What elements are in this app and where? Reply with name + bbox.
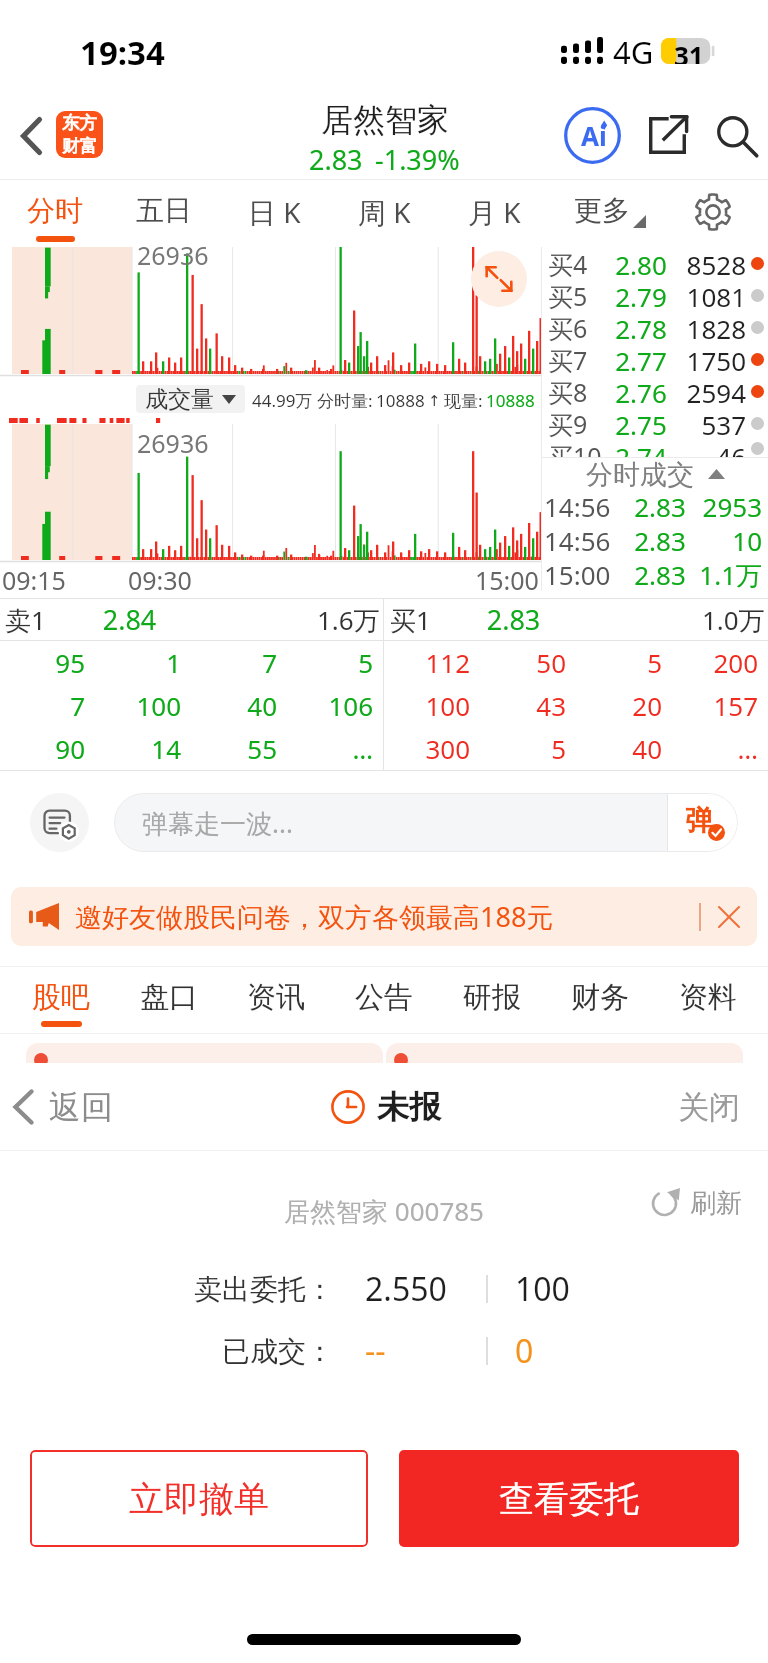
staticText: 09:15 [2, 563, 66, 591]
button[interactable]: 买6 [542, 311, 768, 343]
button[interactable]: 7 [0, 684, 383, 727]
staticText: 2.83 [309, 141, 363, 178]
button[interactable]: 95 [0, 641, 383, 684]
button[interactable]: 立即撤单 [30, 1450, 368, 1547]
button[interactable]: 分时成交 [542, 458, 768, 489]
button[interactable]: 日 K [219, 180, 329, 247]
staticText: 买8 [548, 375, 606, 407]
staticText: 43 [480, 688, 566, 723]
staticText: 买7 [548, 343, 606, 375]
staticText: 2953 [694, 489, 762, 523]
button[interactable]: Fullscreen [471, 251, 527, 307]
button[interactable]: Settings [675, 180, 750, 247]
staticText: 2.76 [606, 375, 676, 407]
staticText: 买6 [548, 311, 606, 343]
button[interactable]: East Money logo [56, 111, 103, 158]
button[interactable]: 周 K [329, 180, 439, 247]
button[interactable]: 买9 [542, 407, 768, 439]
staticText: 2.74 [606, 439, 676, 457]
staticText: 买1 [390, 602, 431, 638]
button[interactable]: 90 [0, 727, 383, 770]
button[interactable]: 更多 [550, 180, 670, 247]
staticText: 14:56 [544, 489, 626, 523]
staticText: 300 [384, 731, 470, 766]
staticText: 1.0万 [702, 602, 765, 638]
button[interactable]: Send danmu [668, 793, 738, 852]
staticText: 14:56 [544, 523, 626, 557]
staticText: 分时成交 [586, 458, 694, 489]
staticText: 买4 [548, 247, 606, 279]
staticText: 106 [287, 688, 373, 723]
button[interactable]: 成交量 [145, 385, 236, 413]
button[interactable]: Back [6, 104, 56, 168]
staticText: 资讯 [247, 979, 305, 1016]
button[interactable]: 返回 [14, 1077, 113, 1137]
staticText: 100 [95, 688, 181, 723]
staticText: 分时 [27, 193, 83, 228]
staticText: 8528 [676, 247, 746, 279]
staticText: 1 [95, 645, 181, 680]
staticText: 15:00 [544, 557, 626, 591]
staticText: 1081 [676, 279, 746, 311]
button[interactable]: 弹幕走一波... [114, 793, 667, 852]
staticText: 100 [515, 1267, 570, 1311]
staticText: 100 [384, 688, 470, 723]
button[interactable]: 100 [384, 684, 768, 727]
staticText: 46 [676, 439, 746, 457]
button[interactable]: 112 [384, 641, 768, 684]
staticText: -1.39% [375, 141, 460, 178]
button[interactable]: 14:56 [542, 523, 768, 557]
button[interactable]: 研报 [438, 967, 546, 1034]
staticText: 50 [480, 645, 566, 680]
staticText: ↑ [428, 392, 441, 409]
staticText: 已成交： [0, 1334, 334, 1369]
button[interactable]: 股吧 [7, 967, 115, 1034]
button[interactable]: 买10 [542, 439, 768, 457]
staticText: 东方 [62, 112, 97, 134]
button[interactable]: 分时 [0, 180, 110, 247]
staticText: 2.80 [606, 247, 676, 279]
staticText: 月 K [468, 193, 521, 231]
button[interactable]: 买8 [542, 375, 768, 407]
staticText: 2.83 [626, 489, 694, 523]
button[interactable]: 资料 [654, 967, 762, 1034]
button[interactable]: Comments [30, 793, 89, 852]
button[interactable]: 邀好友做股民问卷，双方各领最高188元 [11, 887, 757, 946]
button[interactable]: 15:00 [542, 557, 768, 591]
staticText: 公告 [355, 979, 413, 1016]
staticText: 买9 [548, 407, 606, 439]
button[interactable]: 盘口 [115, 967, 223, 1034]
staticText: 7 [191, 645, 277, 680]
button[interactable]: 五日 [109, 180, 219, 247]
button[interactable]: Refresh [649, 1187, 742, 1220]
button[interactable]: AI assistant [560, 103, 625, 168]
button[interactable]: 关闭 [664, 1077, 754, 1137]
button[interactable]: 300 [384, 727, 768, 770]
button[interactable]: Share [637, 105, 698, 166]
staticText: … [287, 731, 373, 766]
button[interactable]: 资讯 [222, 967, 330, 1034]
button[interactable]: 财务 [546, 967, 654, 1034]
button[interactable]: Close banner [701, 887, 757, 946]
staticText: 返回 [49, 1087, 113, 1127]
staticText: 成交量 [145, 385, 214, 413]
staticText: 卖1 [5, 602, 46, 638]
staticText: 盘口 [140, 979, 198, 1016]
staticText: 95 [0, 645, 85, 680]
button[interactable]: 公告 [330, 967, 438, 1034]
button[interactable]: 月 K [439, 180, 549, 247]
button[interactable]: 买7 [542, 343, 768, 375]
staticText: 分时量: [317, 389, 373, 412]
button[interactable]: 14:56 [542, 489, 768, 523]
button[interactable]: 查看委托 [399, 1450, 739, 1547]
button[interactable]: Search [706, 105, 767, 166]
staticText: 买10 [548, 439, 606, 457]
staticText: -- [365, 1329, 486, 1373]
button[interactable]: 买5 [542, 279, 768, 311]
staticText: 10 [694, 523, 762, 557]
button[interactable]: 买4 [542, 247, 768, 279]
staticText: 买5 [548, 279, 606, 311]
staticText: 弹幕走一波... [142, 805, 293, 841]
staticText: 10888 [376, 389, 425, 412]
staticText: 查看委托 [499, 1477, 639, 1521]
